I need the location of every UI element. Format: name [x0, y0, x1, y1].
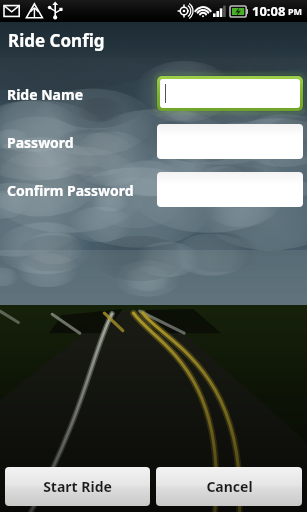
- button[interactable]: Start Ride: [5, 467, 150, 506]
- staticText: PM: [288, 5, 303, 17]
- button[interactable]: [157, 124, 303, 159]
- staticText: Ride Config: [8, 29, 105, 52]
- button[interactable]: [157, 172, 303, 207]
- button[interactable]: [157, 76, 303, 111]
- button[interactable]: Cancel: [156, 467, 302, 506]
- staticText: Confirm Password: [7, 181, 134, 200]
- staticText: Ride Name: [7, 85, 83, 104]
- staticText: Password: [7, 133, 74, 152]
- staticText: Start Ride: [43, 477, 112, 496]
- staticText: 10:08: [252, 2, 286, 20]
- staticText: Cancel: [206, 477, 253, 496]
